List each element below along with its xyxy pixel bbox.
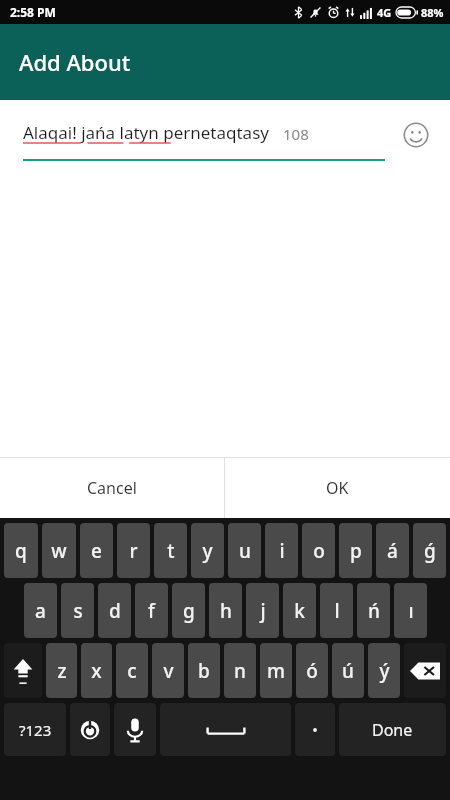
staticText: m (267, 658, 285, 684)
button[interactable]: n (224, 643, 256, 698)
button[interactable]: ý (368, 643, 400, 698)
staticText: 4G (377, 5, 392, 20)
button[interactable]: ó (296, 643, 328, 698)
button[interactable]: Done (339, 703, 446, 756)
staticText: b (198, 658, 210, 684)
staticText: Cancel (87, 477, 137, 499)
staticText: s (73, 598, 83, 624)
button[interactable]: d (98, 583, 131, 638)
staticText: p (350, 538, 362, 564)
button[interactable]: OK (225, 458, 450, 518)
button[interactable]: Emoji (394, 113, 438, 157)
button[interactable] (295, 703, 335, 756)
button[interactable]: Space (160, 703, 291, 756)
button[interactable]: z (46, 643, 77, 698)
button[interactable]: e (80, 523, 113, 578)
button[interactable]: ı (394, 583, 427, 638)
button[interactable]: y (191, 523, 224, 578)
button[interactable]: Change language (70, 703, 110, 756)
button[interactable]: v (152, 643, 184, 698)
button[interactable]: x (81, 643, 112, 698)
staticText: q (15, 538, 27, 564)
button[interactable]: b (188, 643, 220, 698)
button[interactable]: t (154, 523, 187, 578)
staticText: c (127, 658, 137, 684)
staticText: y (202, 538, 213, 564)
button[interactable]: m (260, 643, 292, 698)
staticText: Add About (19, 47, 131, 77)
staticText: ǵ (424, 538, 436, 564)
staticText: ú (342, 658, 354, 684)
staticText: g (183, 598, 195, 624)
button[interactable]: j (246, 583, 279, 638)
staticText: d (109, 598, 121, 624)
button[interactable]: r (117, 523, 150, 578)
button[interactable]: a (24, 583, 57, 638)
button[interactable]: Voice input (114, 703, 156, 756)
staticText: v (163, 658, 174, 684)
staticText: r (129, 538, 138, 564)
staticText: ý (379, 658, 390, 684)
button[interactable]: l (320, 583, 353, 638)
button[interactable]: Backspace (404, 643, 446, 698)
button[interactable]: w (42, 523, 76, 578)
staticText: e (91, 538, 102, 564)
staticText: i (279, 538, 285, 564)
staticText: ı (408, 598, 414, 624)
button[interactable]: s (61, 583, 94, 638)
button[interactable]: c (116, 643, 148, 698)
staticText: Alaqai! jańa latyn pernetaqtasy (23, 121, 269, 144)
button[interactable]: ?123 (4, 703, 66, 756)
button[interactable]: f (135, 583, 168, 638)
button[interactable]: ú (332, 643, 364, 698)
staticText: w (51, 538, 67, 564)
button[interactable]: p (339, 523, 372, 578)
staticText: ó (306, 658, 318, 684)
staticText: n (234, 658, 246, 684)
button[interactable]: h (209, 583, 242, 638)
staticText: 2:58 PM (10, 4, 56, 20)
button[interactable]: o (302, 523, 335, 578)
staticText: ?123 (19, 720, 52, 740)
button[interactable]: á (376, 523, 409, 578)
staticText: ń (368, 598, 380, 624)
staticText: á (387, 538, 398, 564)
staticText: k (294, 598, 305, 624)
staticText: Done (372, 719, 413, 741)
staticText: 88% (421, 5, 444, 20)
button[interactable]: g (172, 583, 205, 638)
staticText: j (260, 598, 266, 624)
staticText: h (220, 598, 232, 624)
staticText: 108 (283, 124, 309, 144)
staticText: t (167, 538, 175, 564)
button[interactable]: Alaqai! jańa latyn pernetaqtasy (23, 109, 385, 161)
button[interactable]: ǵ (413, 523, 446, 578)
button[interactable]: i (265, 523, 298, 578)
staticText: u (239, 538, 251, 564)
button[interactable]: Shift (4, 643, 42, 698)
staticText: OK (326, 477, 349, 499)
button[interactable]: ń (357, 583, 390, 638)
staticText: a (35, 598, 46, 624)
staticText: x (91, 658, 102, 684)
staticText: o (313, 538, 325, 564)
staticText: z (57, 658, 67, 684)
staticText: l (334, 598, 340, 624)
button[interactable]: u (228, 523, 261, 578)
button[interactable]: k (283, 583, 316, 638)
staticText: f (148, 598, 155, 624)
button[interactable]: q (4, 523, 38, 578)
button[interactable]: Cancel (0, 458, 224, 518)
